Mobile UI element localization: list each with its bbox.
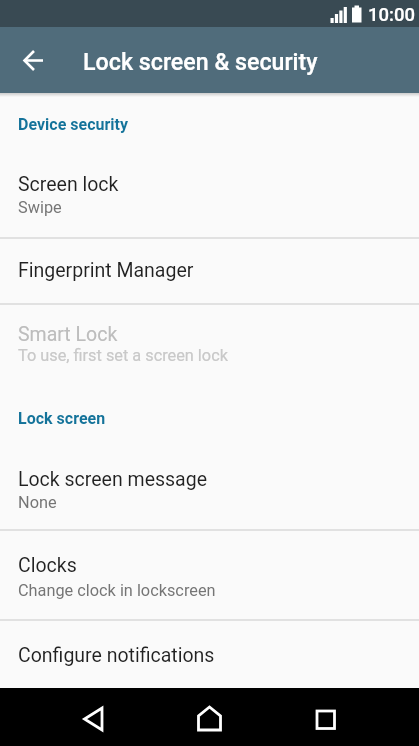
staticText: Swipe: [18, 198, 62, 217]
button[interactable]: Smart Lock: [0, 303, 419, 390]
staticText: Change clock in lockscreen: [18, 581, 216, 600]
button[interactable]: [139, 688, 279, 746]
staticText: Lock screen & security: [83, 48, 318, 75]
staticText: Device security: [18, 115, 128, 134]
button[interactable]: [0, 688, 139, 746]
staticText: Lock screen message: [18, 468, 208, 491]
staticText: To use, first set a screen lock: [18, 346, 228, 365]
staticText: Configure notifications: [18, 644, 215, 667]
staticText: Screen lock: [18, 173, 119, 196]
staticText: None: [18, 493, 57, 512]
button[interactable]: Fingerprint Manager: [0, 237, 419, 303]
button[interactable]: Clocks: [0, 529, 419, 619]
button[interactable]: Lock screen message: [0, 453, 419, 529]
staticText: Clocks: [18, 554, 77, 577]
button[interactable]: [279, 688, 419, 746]
staticText: 10:00: [368, 4, 415, 26]
staticText: Fingerprint Manager: [18, 259, 194, 282]
staticText: Lock screen: [18, 409, 106, 428]
button[interactable]: Screen lock: [0, 153, 419, 237]
button[interactable]: Configure notifications: [0, 619, 419, 688]
button[interactable]: [13, 40, 53, 80]
staticText: Smart Lock: [18, 323, 118, 346]
